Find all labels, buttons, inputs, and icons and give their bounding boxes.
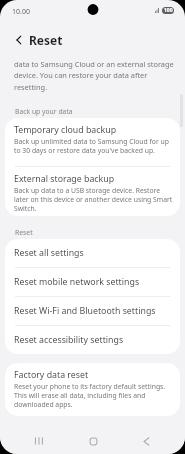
button[interactable]: External storage backup xyxy=(5,167,180,216)
staticText: Reset all settings xyxy=(14,247,84,259)
staticText: Reset accessibility settings xyxy=(14,334,124,346)
button[interactable]: Back xyxy=(11,32,27,48)
button[interactable]: Temporary cloud backup xyxy=(5,118,180,166)
button[interactable]: Back xyxy=(132,428,160,454)
staticText: Reset mobile network settings xyxy=(14,276,140,288)
staticText: Reset Wi-Fi and Bluetooth settings xyxy=(14,305,156,317)
staticText: Temporary cloud backup xyxy=(14,124,117,136)
staticText: Back up data to a USB storage device. Re… xyxy=(14,186,174,213)
staticText: External storage backup xyxy=(14,173,115,185)
button[interactable]: Reset all settings xyxy=(5,239,180,267)
button[interactable]: Recent apps xyxy=(25,428,53,454)
staticText: Reset xyxy=(15,228,33,237)
button[interactable]: Reset mobile network settings xyxy=(5,268,180,296)
staticText: Reset xyxy=(29,32,63,48)
staticText: Factory data reset xyxy=(14,369,89,381)
button[interactable]: Home xyxy=(79,428,107,454)
staticText: data to Samsung Cloud or an external sto… xyxy=(14,59,176,93)
staticText: 100 xyxy=(164,7,173,14)
button[interactable]: Factory data reset xyxy=(5,363,180,416)
button[interactable]: Reset Wi-Fi and Bluetooth settings xyxy=(5,297,180,325)
staticText: 10.00 xyxy=(12,7,30,17)
staticText: Back up unlimited data to Samsung Cloud … xyxy=(14,137,174,155)
staticText: Back up your data xyxy=(15,107,73,116)
staticText: Reset your phone to its factory default … xyxy=(14,382,174,409)
button[interactable]: Reset accessibility settings xyxy=(5,326,180,354)
